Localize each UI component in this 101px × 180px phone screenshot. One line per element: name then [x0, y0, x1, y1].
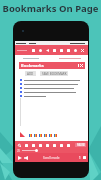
- button[interactable]: Tool 4: [52, 48, 56, 52]
- button[interactable]: Action 2: [24, 143, 28, 147]
- button[interactable]: SAVE BOOKMARK: [40, 71, 68, 76]
- button[interactable]: Tool 3: [45, 48, 49, 52]
- staticText: 1: [79, 156, 81, 160]
- button[interactable]: Tool 7: [73, 48, 77, 52]
- staticText: 25: [17, 149, 21, 153]
- button[interactable]: Tool 8: [80, 48, 84, 52]
- button[interactable]: Action 4: [38, 143, 42, 147]
- staticText: Scroll mode: [43, 156, 60, 160]
- button[interactable]: Action 7: [59, 143, 63, 147]
- button[interactable]: Action 8: [66, 143, 70, 147]
- button[interactable]: Close: [79, 63, 84, 68]
- button[interactable]: Tool 5: [59, 48, 63, 52]
- staticText: Bookmarks On Page: [0, 2, 101, 15]
- button[interactable]: Action 6: [52, 143, 56, 147]
- button[interactable]: Volume: [24, 156, 28, 160]
- staticText: ADD: [27, 72, 34, 76]
- staticText: SAVE BOOKMARK: [42, 72, 67, 76]
- staticText: Bookmarks: [21, 63, 44, 68]
- button[interactable]: Lock: [83, 156, 86, 159]
- button[interactable]: Tool 2: [38, 48, 42, 52]
- staticText: PAUSE: [77, 143, 85, 147]
- button[interactable]: Action 5: [45, 143, 49, 147]
- button[interactable]: Tool 1: [31, 48, 35, 52]
- button[interactable]: ADD: [25, 71, 36, 76]
- button[interactable]: Action 3: [31, 143, 35, 147]
- button[interactable]: PAUSE: [75, 143, 86, 147]
- button[interactable]: Action 1: [17, 143, 21, 147]
- button[interactable]: Play: [18, 156, 22, 160]
- button[interactable]: Tool 6: [66, 48, 70, 52]
